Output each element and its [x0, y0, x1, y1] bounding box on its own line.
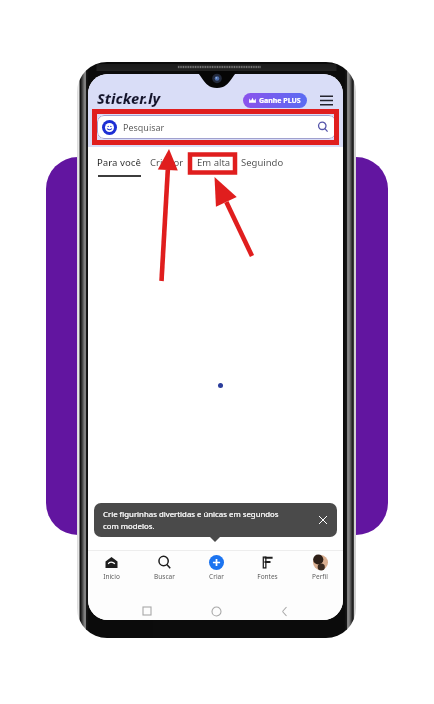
button[interactable]: Criador: [150, 156, 184, 169]
button[interactable]: Voltar: [275, 602, 293, 620]
staticText: Criador: [150, 156, 184, 169]
button[interactable]: Buscar: [150, 553, 179, 583]
staticText: Fontes: [257, 572, 278, 581]
staticText: Seguindo: [241, 156, 284, 169]
staticText: Criar: [209, 572, 224, 581]
button[interactable]: Para você: [97, 156, 141, 169]
staticText: Início: [103, 572, 120, 581]
staticText: Ganhe PLUS: [259, 96, 301, 106]
staticText: Pesquisar: [123, 121, 165, 133]
staticText: Crie figurinhas divertidas e únicas em s…: [103, 509, 279, 531]
button[interactable]: Recentes: [138, 602, 156, 620]
button[interactable]: Ganhe PLUS: [243, 93, 307, 108]
button[interactable]: Criar: [205, 553, 228, 583]
staticText: Buscar: [154, 572, 175, 581]
button[interactable]: Início: [207, 602, 225, 620]
button[interactable]: Fechar: [315, 512, 331, 528]
staticText: Perfil: [312, 572, 328, 581]
button[interactable]: Seguindo: [241, 156, 284, 169]
button[interactable]: Em alta: [197, 156, 231, 169]
staticText: Sticker.ly: [97, 88, 161, 108]
button[interactable]: Fontes: [253, 553, 282, 583]
button[interactable]: Pesquisar: [97, 115, 336, 139]
button[interactable]: Início: [99, 553, 124, 583]
staticText: Para você: [97, 156, 141, 169]
staticText: Em alta: [197, 156, 231, 169]
button[interactable]: Perfil: [308, 553, 332, 583]
button[interactable]: Menu: [319, 92, 334, 108]
